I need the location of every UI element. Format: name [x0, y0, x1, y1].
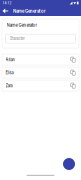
staticText: Elisa — [5, 70, 13, 75]
button[interactable]: Zara — [2, 80, 79, 91]
button[interactable]: Elisa — [2, 67, 79, 78]
button[interactable]: Back — [0, 6, 10, 16]
staticText: Character — [9, 36, 24, 41]
button[interactable]: Generate name — [63, 158, 75, 170]
button[interactable]: Arian — [2, 54, 79, 65]
staticText: 14:12 — [2, 1, 11, 5]
staticText: Arian — [5, 57, 14, 62]
staticText: Name Generator — [6, 22, 37, 28]
staticText: Name Generator — [13, 8, 46, 14]
staticText: Zara — [5, 83, 12, 88]
